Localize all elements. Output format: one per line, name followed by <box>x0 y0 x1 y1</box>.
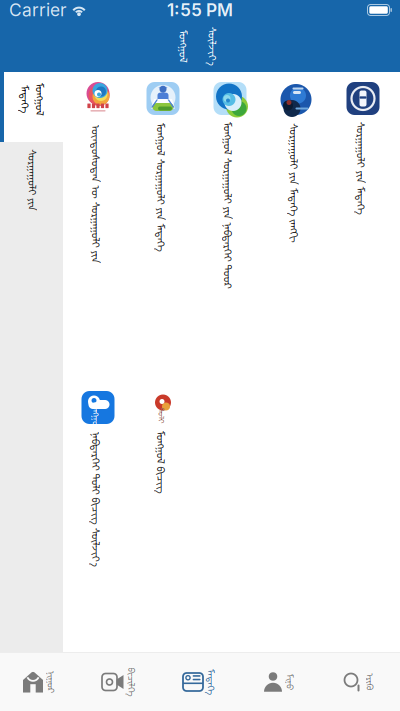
button[interactable]: ᠮᠡᠳᠡᠭᠡ <box>160 653 240 711</box>
staticText: ᠮᠣᠩᠭᠣᠯ ᠰᠤᠷᠭᠠᠭᠤᠯᠢ ᠶᠢᠨ ᠨᠡᠪᠲᠡᠷᠬᠡᠢ ᠲᠣᠣᠷ <box>146 196 313 214</box>
staticText: ᠰᠤᠷᠭᠠᠭᠤᠯᠢ ᠶᠢᠨ ᠮᠡᠳᠡᠭᠡ ᠵᠠᠩᠭᠢ <box>236 174 356 192</box>
button[interactable]: ᠮᠢᠨᠦ <box>240 653 320 711</box>
staticText: ᠨᠢᠭᠤᠷ <box>41 674 64 690</box>
staticText: ᠮᠢᠨᠦ <box>283 674 300 690</box>
button[interactable]: ᠲᠣᠯᠢ <box>137 391 189 495</box>
staticText: ᠮᠡᠳᠡᠭᠡ <box>200 674 226 690</box>
staticText: ᠦᠨᠳᠦᠰᠦᠲᠡᠨ ᠦ ᠰᠤᠷᠭᠠᠭᠤᠯᠢ ᠶᠢᠨ <box>28 185 167 203</box>
button[interactable]: ᠦᠨᠳᠦᠰᠦᠲᠡᠨ ᠦ ᠰᠤᠷᠭᠠᠭᠤᠯᠢ ᠶᠢᠨ <box>72 82 124 268</box>
button[interactable]: ᠡᠷᠢᠬᠦ <box>320 653 400 711</box>
staticText: ᠮᠣᠩᠭᠣᠯ ᠰᠤᠷᠭᠠᠭᠤᠯᠢ ᠶᠢᠨ ᠮᠡᠳᠡᠭᠡ <box>98 178 227 196</box>
staticText: ᠰᠤᠷᠭᠠᠭᠤᠯᠢ ᠶᠢᠨ <box>3 171 65 189</box>
staticText: ᠪᠢᠴᠢᠯᠭᠡ <box>119 674 148 690</box>
button[interactable]: ᠰᠤᠷᠭᠠᠭᠤᠯᠢ ᠶᠢᠨ <box>0 142 63 216</box>
button[interactable]: ᠮᠣᠩᠭᠣᠯ ᠰᠤᠷᠭᠠᠭᠤᠯᠢ ᠶᠢᠨ ᠮᠡᠳᠡᠭᠡ <box>137 82 189 254</box>
staticText: ᠡᠷᠢᠬᠦ <box>363 674 381 690</box>
button[interactable]: ᠮᠣᠩᠭᠣᠯ <box>72 391 124 569</box>
staticText: ᠰᠤᠷᠭᠠᠭᠤᠯᠢ ᠶᠢᠨ ᠮᠡᠳᠡᠭᠡ <box>316 159 400 177</box>
staticText: 1:55 PM <box>167 0 233 20</box>
button[interactable]: ᠰᠤᠷᠭᠠᠭᠤᠯᠢ ᠶᠢᠨ ᠮᠡᠳᠡᠭᠡ ᠵᠠᠩᠭᠢ <box>270 83 322 245</box>
staticText: ᠮᠣᠩᠭᠣᠯ <box>25 90 58 108</box>
staticText: ᠮᠣᠩᠭᠣᠯ <box>169 37 202 55</box>
button[interactable]: ᠮᠣᠩᠭᠣᠯ ᠰᠤᠷᠭᠠᠭᠤᠯᠢ ᠶᠢᠨ ᠨᠡᠪᠲᠡᠷᠬᠡᠢ ᠲᠣᠣᠷ <box>204 82 256 290</box>
staticText: ᠰᠦᠯᠵᠢᠶ᠎ᠡ <box>195 37 234 55</box>
staticText: Carrier <box>9 0 67 20</box>
staticText: ᠮᠣᠩᠭᠣᠯ <box>83 407 113 424</box>
button[interactable]: ᠨᠢᠭᠤᠷ <box>0 653 80 711</box>
button[interactable]: ᠪᠢᠴᠢᠯᠭᠡ <box>80 653 160 711</box>
staticText: ᠲᠣᠯᠢ <box>155 408 171 422</box>
button[interactable]: ᠮᠡᠳᠡᠭᠡ <box>0 72 63 142</box>
staticText: ᠨᠡᠪᠲᠡᠷᠬᠡᠢ ᠲᠣᠯᠢ ᠪᠢᠴᠢᠭ ᠰᠦᠯᠵᠢᠶ᠎ᠡ <box>30 490 165 508</box>
staticText: ᠮᠡᠳᠡᠭᠡ <box>13 90 41 108</box>
staticText: ᠮᠣᠩᠭᠣᠯ ᠪᠢᠴᠢᠭ <box>131 453 194 471</box>
button[interactable]: ᠰᠤᠷᠭᠠᠭᠤᠯᠢ ᠶᠢᠨ ᠮᠡᠳᠡᠭᠡ <box>337 82 389 216</box>
